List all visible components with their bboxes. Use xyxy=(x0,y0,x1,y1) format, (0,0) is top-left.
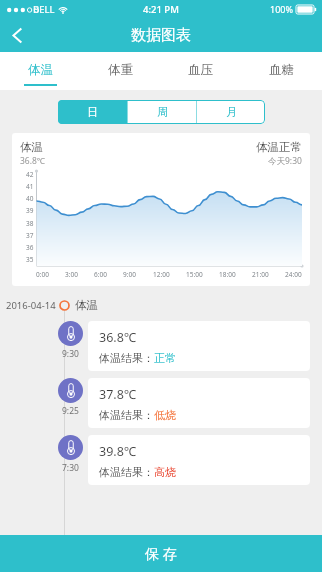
staticText: 体温正常 xyxy=(256,140,302,154)
staticText: 37.8℃ xyxy=(99,386,137,403)
staticText: 月 xyxy=(226,105,237,119)
staticText: 40 xyxy=(26,194,34,203)
staticText: 体温 xyxy=(28,62,53,78)
staticText: 39 xyxy=(26,206,34,215)
button[interactable]: 7:30 xyxy=(0,435,322,485)
staticText: 35 xyxy=(26,255,34,264)
staticText: 今天9:30 xyxy=(268,155,302,167)
staticText: 日 xyxy=(87,105,98,119)
button[interactable]: 9:30 xyxy=(0,321,322,371)
button[interactable]: 血糖 xyxy=(241,52,322,90)
button[interactable]: 月 xyxy=(197,100,265,124)
staticText: 100% xyxy=(270,3,293,15)
staticText: 体重 xyxy=(108,62,133,78)
button[interactable]: 体重 xyxy=(80,52,160,90)
staticText: 体温结果：正常 xyxy=(99,351,176,365)
staticText: 9:25 xyxy=(62,405,79,417)
button[interactable]: 9:25 xyxy=(0,378,322,428)
button[interactable]: 血压 xyxy=(160,52,241,90)
staticText: 4:21 PM xyxy=(143,3,179,16)
staticText: 3:00 xyxy=(65,270,78,279)
staticText: 0:00 xyxy=(36,270,49,279)
staticText: 保 存 xyxy=(145,544,177,563)
staticText: 体温结果：低烧 xyxy=(99,408,176,422)
staticText: BELL xyxy=(33,3,55,16)
button[interactable]: 周 xyxy=(128,100,196,124)
staticText: 39.8℃ xyxy=(99,443,137,460)
staticText: 周 xyxy=(157,105,168,119)
staticText: 38 xyxy=(26,219,34,228)
staticText: 12:00 xyxy=(153,270,170,279)
staticText: 36.8℃ xyxy=(20,155,46,167)
staticText: 血糖 xyxy=(269,62,294,78)
button[interactable]: 日 xyxy=(58,100,127,124)
staticText: 36.8℃ xyxy=(99,329,137,346)
staticText: 数据图表 xyxy=(131,26,191,45)
staticText: 37 xyxy=(26,231,34,240)
staticText: 7:30 xyxy=(62,462,79,474)
staticText: 18:00 xyxy=(219,270,236,279)
staticText: 体温 xyxy=(20,140,43,154)
staticText: 体温结果：高烧 xyxy=(99,465,176,479)
staticText: 9:30 xyxy=(62,348,79,360)
staticText: 2016-04-14 xyxy=(6,299,56,312)
button[interactable]: 体温 xyxy=(0,52,80,90)
button[interactable]: Back xyxy=(0,18,34,52)
staticText: 体温 xyxy=(75,298,98,312)
staticText: 24:00 xyxy=(285,270,302,279)
staticText: 9:00 xyxy=(123,270,136,279)
staticText: 36 xyxy=(26,243,34,252)
button[interactable]: 保 存 xyxy=(0,535,322,572)
staticText: 15:00 xyxy=(186,270,203,279)
staticText: 21:00 xyxy=(252,270,269,279)
staticText: 血压 xyxy=(188,62,213,78)
staticText: 41 xyxy=(26,182,34,191)
staticText: 6:00 xyxy=(94,270,107,279)
staticText: 42 xyxy=(26,170,34,179)
